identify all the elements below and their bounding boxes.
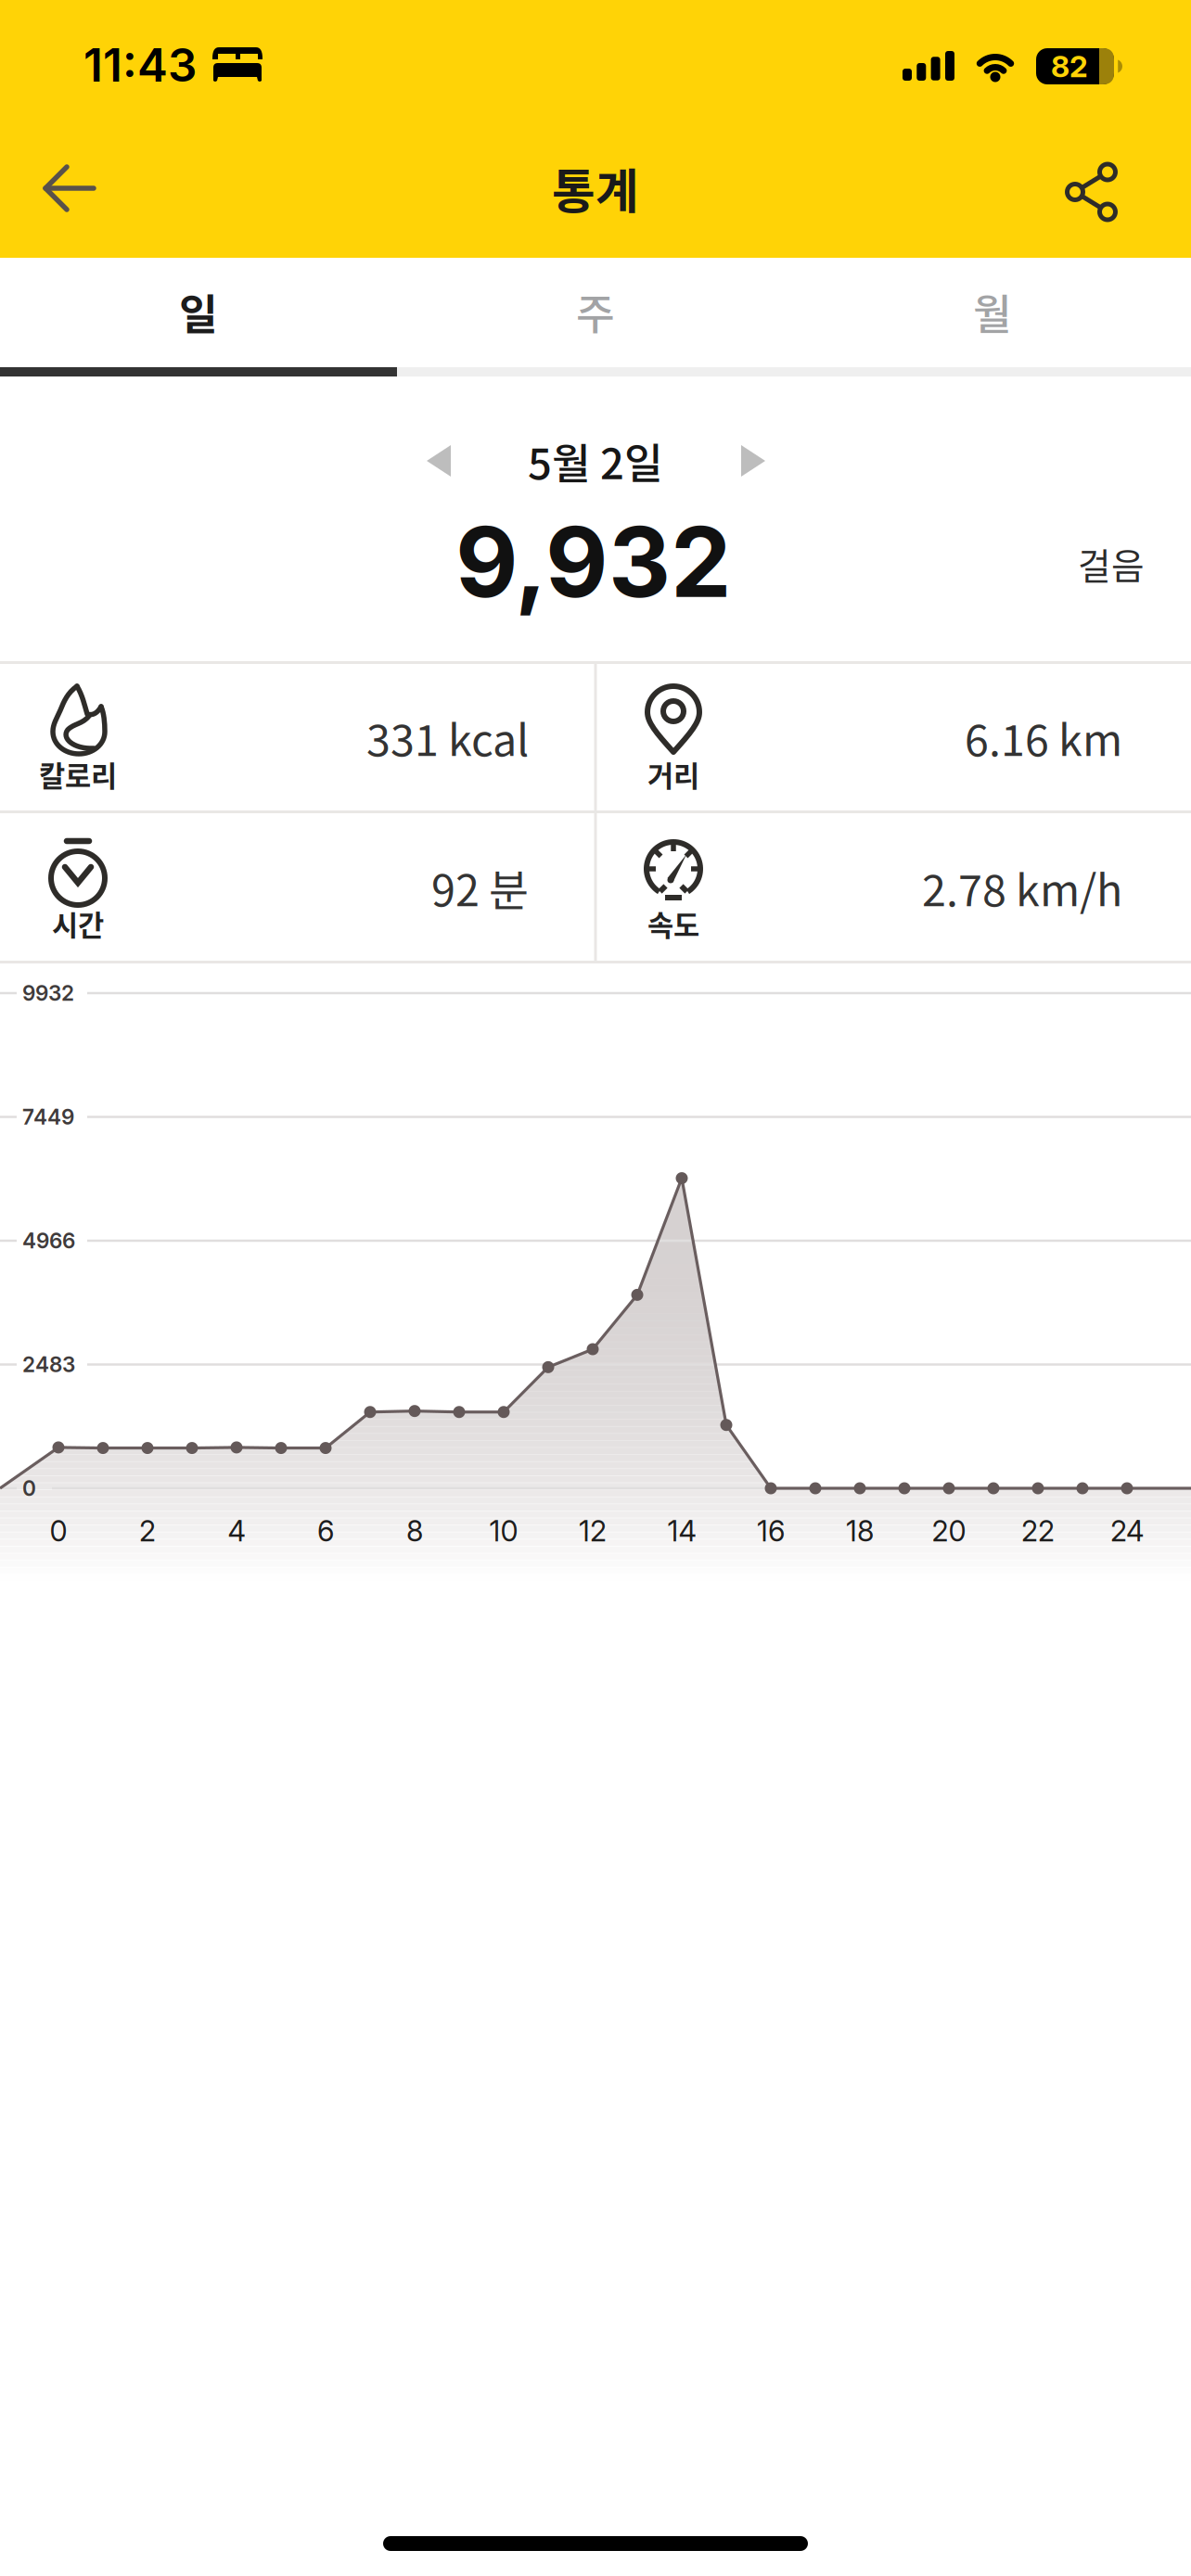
staticText: 12 — [579, 1514, 607, 1548]
button[interactable]: 월 — [794, 257, 1191, 366]
staticText: 11:43 — [83, 37, 197, 93]
staticText: 6.16 km — [965, 706, 1122, 769]
staticText: 331 kcal — [366, 706, 529, 769]
button[interactable]: 주 — [397, 257, 794, 366]
staticText: 9932 — [22, 980, 74, 1006]
staticText: 0 — [50, 1514, 67, 1548]
button[interactable]: 일 — [0, 257, 397, 366]
staticText: 월 — [973, 281, 1012, 342]
staticText: 8 — [406, 1514, 423, 1548]
staticText: 걸음 — [1078, 538, 1145, 590]
staticText: 20 — [932, 1514, 966, 1548]
staticText: 22 — [1021, 1514, 1055, 1548]
staticText: 4 — [228, 1514, 245, 1548]
staticText: 거리 — [647, 754, 699, 795]
staticText: 10 — [489, 1514, 518, 1548]
staticText: 92 분 — [431, 856, 529, 919]
staticText: 시간 — [52, 903, 104, 944]
staticText: 속도 — [647, 903, 699, 944]
staticText: 4966 — [22, 1228, 75, 1253]
button[interactable]: Previous day — [427, 445, 451, 477]
staticText: 5월 2일 — [528, 430, 663, 491]
staticText: 주 — [576, 281, 615, 342]
staticText: 82 — [1051, 48, 1088, 84]
staticText: 0 — [22, 1476, 36, 1501]
button[interactable]: Next day — [741, 445, 765, 477]
staticText: 6 — [317, 1514, 334, 1548]
button[interactable]: Share — [1067, 169, 1116, 215]
staticText: 칼로리 — [39, 754, 117, 795]
staticText: 2.78 km/h — [922, 856, 1122, 919]
staticText: 9,932 — [455, 504, 732, 620]
staticText: 7449 — [22, 1104, 74, 1130]
staticText: 16 — [757, 1514, 785, 1548]
staticText: 일 — [179, 281, 218, 342]
staticText: 2483 — [22, 1352, 75, 1377]
staticText: 2 — [139, 1514, 156, 1548]
staticText: 18 — [846, 1514, 874, 1548]
staticText: 24 — [1110, 1514, 1144, 1548]
staticText: 14 — [667, 1514, 696, 1548]
staticText: 통계 — [552, 154, 639, 222]
button[interactable]: Back — [44, 167, 96, 210]
